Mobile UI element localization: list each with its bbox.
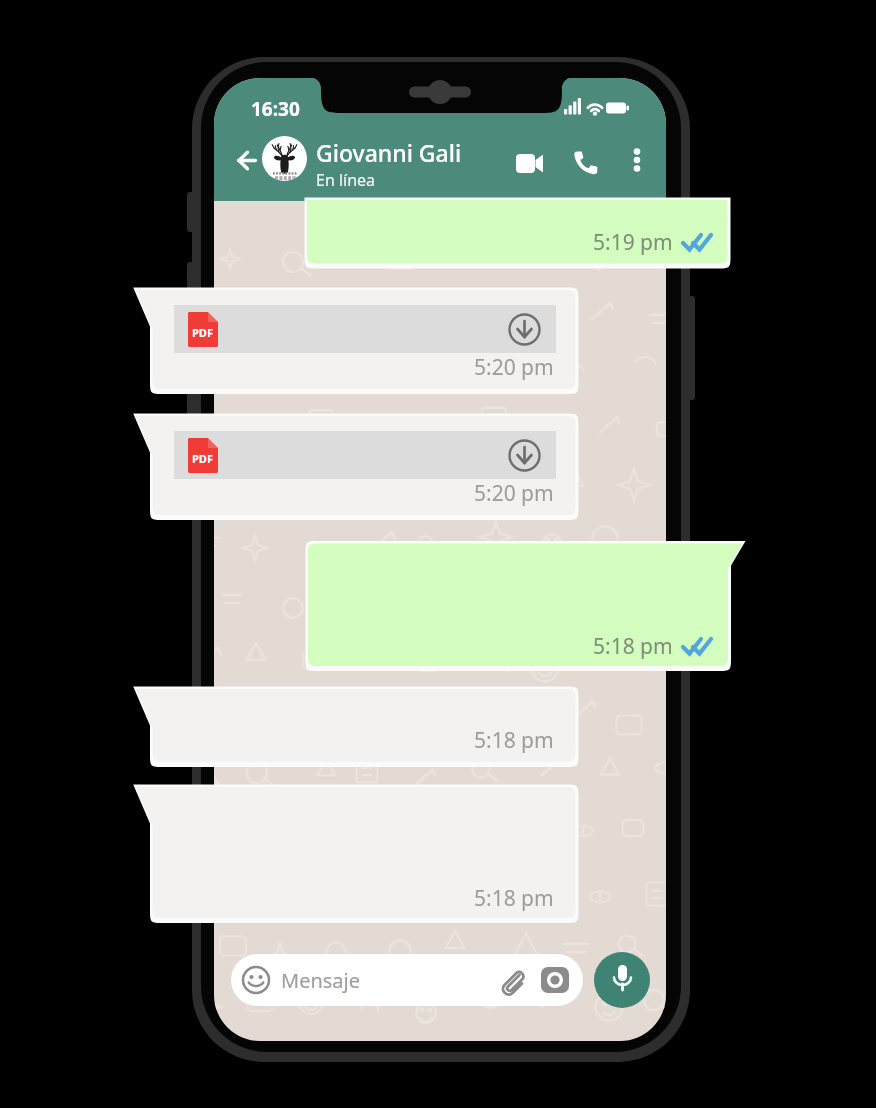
- button[interactable]: Attach file: [497, 965, 527, 995]
- button[interactable]: Call: [565, 142, 607, 184]
- staticText: 5:18 pm: [474, 726, 554, 755]
- button[interactable]: Back: [228, 142, 264, 178]
- button[interactable]: PDF attachment: [174, 305, 556, 353]
- button[interactable]: Download: [508, 439, 541, 472]
- staticText: PDF: [192, 451, 213, 466]
- staticText: PDF: [192, 325, 213, 340]
- staticText: 5:18 pm: [474, 884, 554, 913]
- staticText: 16:30: [251, 96, 300, 122]
- button[interactable]: PDF attachment: [174, 431, 556, 479]
- staticText: 5:20 pm: [474, 479, 554, 508]
- button[interactable]: Video call: [508, 142, 550, 184]
- staticText: 5:18 pm: [593, 632, 673, 661]
- staticText: En línea: [316, 169, 376, 191]
- button[interactable]: Download: [508, 313, 541, 346]
- staticText: 5:19 pm: [593, 228, 673, 257]
- staticText: Mensaje: [281, 967, 361, 994]
- button[interactable]: Mensaje: [231, 954, 583, 1006]
- staticText: 5:20 pm: [474, 353, 554, 382]
- staticText: Giovanni Gali: [316, 137, 462, 168]
- button[interactable]: Voice message: [594, 952, 650, 1008]
- button[interactable]: Camera: [541, 966, 569, 994]
- button[interactable]: Profile photo: [262, 136, 307, 181]
- button[interactable]: More options: [619, 142, 655, 178]
